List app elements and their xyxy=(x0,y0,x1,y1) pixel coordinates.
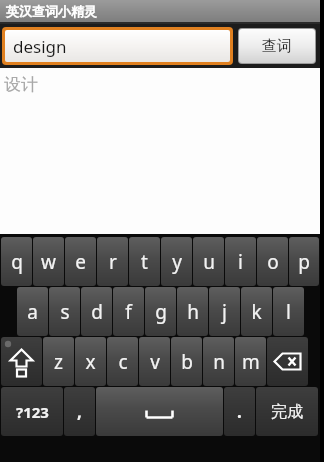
button[interactable]: t xyxy=(129,237,160,286)
button[interactable]: ?123 xyxy=(1,387,63,436)
staticText: h xyxy=(187,299,199,325)
button[interactable]: Space xyxy=(96,387,223,436)
button[interactable]: s xyxy=(49,287,80,336)
staticText: ?123 xyxy=(16,402,49,422)
staticText: i xyxy=(238,249,243,275)
button[interactable]: z xyxy=(43,337,74,386)
button[interactable]: w xyxy=(33,237,64,286)
button[interactable]: g xyxy=(145,287,176,336)
staticText: k xyxy=(251,299,262,325)
staticText: j xyxy=(222,299,227,325)
staticText: 完成 xyxy=(271,402,303,422)
button[interactable]: x xyxy=(75,337,106,386)
staticText: e xyxy=(75,249,86,275)
button[interactable]: p xyxy=(289,237,319,286)
button[interactable]: a xyxy=(17,287,48,336)
staticText: b xyxy=(181,349,193,375)
button[interactable]: o xyxy=(257,237,288,286)
staticText: l xyxy=(286,299,291,325)
button[interactable]: f xyxy=(113,287,144,336)
staticText: , xyxy=(77,400,82,423)
button[interactable]: m xyxy=(235,337,266,386)
button[interactable]: h xyxy=(177,287,208,336)
button[interactable]: c xyxy=(107,337,138,386)
button[interactable]: b xyxy=(171,337,202,386)
staticText: r xyxy=(109,249,117,275)
button[interactable]: y xyxy=(161,237,192,286)
staticText: p xyxy=(298,249,310,275)
staticText: 英汉查词小精灵 xyxy=(6,3,97,19)
button[interactable]: Shift xyxy=(1,337,42,386)
button[interactable]: v xyxy=(139,337,170,386)
staticText: d xyxy=(91,299,103,325)
button[interactable]: design xyxy=(5,30,230,62)
button[interactable]: , xyxy=(64,387,95,436)
staticText: y xyxy=(172,249,182,275)
staticText: v xyxy=(150,349,160,375)
staticText: 查词 xyxy=(262,37,292,56)
staticText: m xyxy=(242,349,260,375)
staticText: q xyxy=(11,249,23,275)
button[interactable]: u xyxy=(193,237,224,286)
staticText: n xyxy=(213,349,225,375)
button[interactable]: q xyxy=(1,237,32,286)
staticText: . xyxy=(237,400,242,423)
staticText: c xyxy=(118,349,128,375)
staticText: 设计 xyxy=(4,74,38,95)
button[interactable]: e xyxy=(65,237,96,286)
staticText: f xyxy=(125,299,132,325)
staticText: o xyxy=(267,249,279,275)
staticText: t xyxy=(141,249,148,275)
staticText: design xyxy=(13,35,67,58)
staticText: g xyxy=(155,299,167,325)
staticText: s xyxy=(60,299,70,325)
button[interactable]: k xyxy=(241,287,272,336)
button[interactable]: 完成 xyxy=(256,387,318,436)
staticText: u xyxy=(203,249,215,275)
button[interactable]: l xyxy=(273,287,304,336)
staticText: w xyxy=(41,249,56,275)
button[interactable]: . xyxy=(224,387,255,436)
button[interactable]: Backspace xyxy=(267,337,308,386)
staticText: x xyxy=(85,349,96,375)
button[interactable]: n xyxy=(203,337,234,386)
button[interactable]: r xyxy=(97,237,128,286)
button[interactable]: d xyxy=(81,287,112,336)
button[interactable]: i xyxy=(225,237,256,286)
button[interactable]: j xyxy=(209,287,240,336)
staticText: z xyxy=(54,349,63,375)
staticText: a xyxy=(27,299,38,325)
button[interactable]: 查词 xyxy=(239,29,315,63)
